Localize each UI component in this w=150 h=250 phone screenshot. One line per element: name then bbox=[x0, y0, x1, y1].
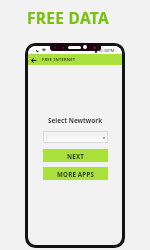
button[interactable]: Select network bbox=[43, 131, 108, 143]
button[interactable]: MORE APPS bbox=[43, 167, 108, 180]
staticText: 10:30PM bbox=[98, 48, 115, 53]
button[interactable]: Back bbox=[30, 57, 36, 63]
staticText: NEXT bbox=[67, 152, 85, 160]
staticText: FREE INTERNET bbox=[42, 57, 76, 62]
staticText: Select Newtwork bbox=[28, 116, 122, 125]
button[interactable]: NEXT bbox=[43, 149, 108, 162]
staticText: FREE DATA bbox=[27, 7, 110, 28]
staticText: MORE APPS bbox=[57, 170, 95, 178]
